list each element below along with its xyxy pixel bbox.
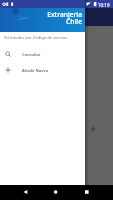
staticText: Añadir Nuevo — [22, 68, 49, 73]
staticText: Solicitudes por Código de correos — [4, 35, 68, 40]
button[interactable]: Consultar — [0, 46, 85, 62]
button[interactable]: Close navigation drawer — [0, 8, 113, 185]
button[interactable]: Add — [86, 122, 100, 136]
button[interactable]: Añadir Nuevo — [0, 62, 85, 78]
staticText: 10:19 — [98, 2, 110, 8]
staticText: Extranjeria Chile — [47, 10, 82, 26]
staticText: Consultar — [22, 52, 41, 57]
